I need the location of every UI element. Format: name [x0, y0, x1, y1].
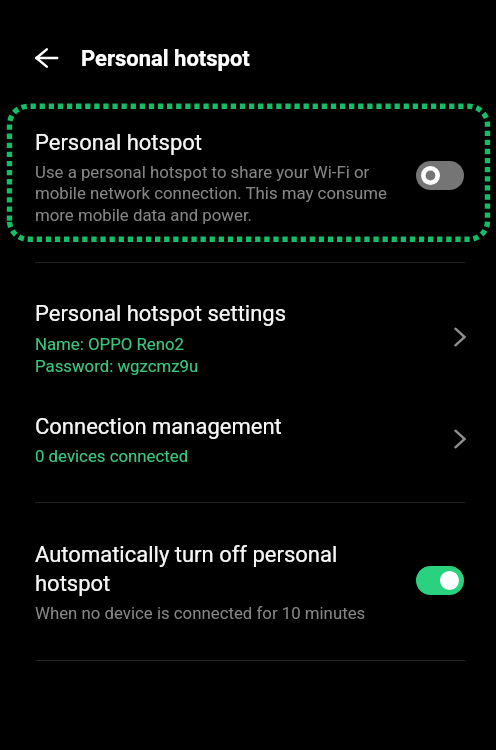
staticText: Automatically turn off personal hotspot [35, 542, 385, 596]
staticText: Personal hotspot settings [35, 301, 287, 327]
button[interactable]: Automatically turn off personal hotspot [0, 503, 496, 660]
staticText: Connection management [35, 414, 282, 440]
staticText: 0 devices connected [35, 446, 189, 466]
button[interactable]: Automatically turn off hotspot switch, o… [416, 566, 464, 595]
staticText: Name: OPPO Reno2 Password: wgzcmz9u [35, 334, 199, 376]
staticText: Personal hotspot [81, 46, 250, 72]
staticText: Personal hotspot [35, 130, 202, 156]
button[interactable]: Personal hotspot switch, off [416, 161, 464, 190]
staticText: Use a personal hotspot to share your Wi-… [35, 162, 407, 226]
button[interactable]: Personal hotspot settings [0, 263, 496, 393]
button[interactable]: Personal hotspot [0, 103, 496, 243]
button[interactable]: Connection management [0, 393, 496, 502]
button[interactable]: Back [25, 36, 69, 80]
staticText: When no device is connected for 10 minut… [35, 603, 366, 623]
